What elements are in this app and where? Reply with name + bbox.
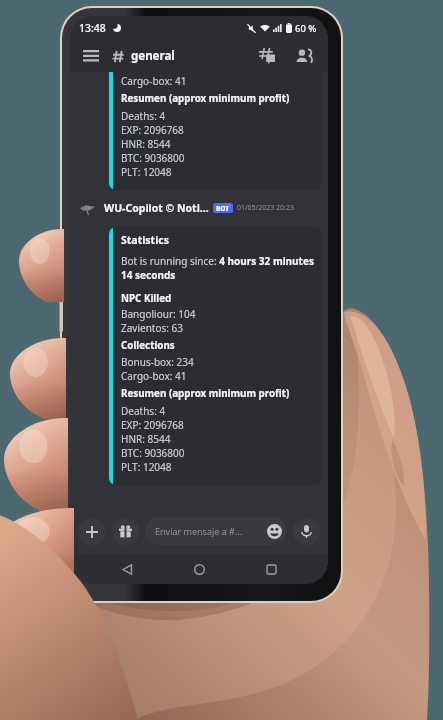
staticText: PLT: 12048	[121, 460, 172, 474]
staticText: EXP: 2096768	[121, 123, 184, 137]
staticText: HNR: 8544	[121, 137, 171, 151]
staticText: Zavientos: 63	[121, 321, 183, 335]
staticText: Resumen (approx minimum profit)	[121, 387, 290, 400]
staticText: PLT: 12048	[121, 165, 172, 179]
staticText: BTC: 9036800	[121, 151, 185, 165]
staticText: HNR: 8544	[121, 432, 171, 446]
button[interactable]: Enviar mensaje a #...	[145, 517, 287, 545]
button[interactable]: Voice message	[293, 518, 320, 545]
staticText: Cargo-box: 41	[121, 74, 187, 88]
staticText: Collections	[121, 339, 175, 352]
button[interactable]: Add attachment	[78, 518, 105, 545]
staticText: 13:48	[79, 21, 106, 35]
button[interactable]: Send a gift	[112, 518, 139, 545]
staticText: Bonus-box: 234	[121, 355, 194, 369]
staticText: 01/05/2023 20:23	[237, 203, 294, 213]
staticText: Resumen (approx minimum profit)	[121, 92, 290, 105]
staticText: general	[131, 48, 175, 64]
staticText: WU-Copilot © Noti...	[104, 201, 209, 215]
button[interactable]: Threads	[255, 44, 279, 68]
staticText: NPC Killed	[121, 292, 172, 305]
staticText: Deaths: 4	[121, 109, 166, 123]
staticText: Collections	[121, 44, 175, 57]
staticText: Bangoliour: 104	[121, 307, 196, 321]
staticText: Bonus-box: 234	[121, 60, 194, 74]
button[interactable]: Open navigation drawer	[79, 44, 103, 68]
button[interactable]: Home	[184, 554, 214, 584]
button[interactable]: Back	[112, 554, 142, 584]
staticText: Enviar mensaje a #...	[155, 525, 243, 537]
staticText: BTC: 9036800	[121, 446, 185, 460]
staticText: EXP: 2096768	[121, 418, 184, 432]
button[interactable]: Recent apps	[256, 554, 286, 584]
staticText: BOT	[216, 204, 230, 213]
staticText: Deaths: 4	[121, 404, 166, 418]
button[interactable]: Show member list	[292, 44, 316, 68]
staticText: Cargo-box: 41	[121, 369, 187, 383]
staticText: 60 %	[295, 22, 317, 35]
staticText: Statistics	[121, 233, 169, 247]
staticText: Bot is running since: 4 hours 32 minutes…	[121, 254, 316, 281]
